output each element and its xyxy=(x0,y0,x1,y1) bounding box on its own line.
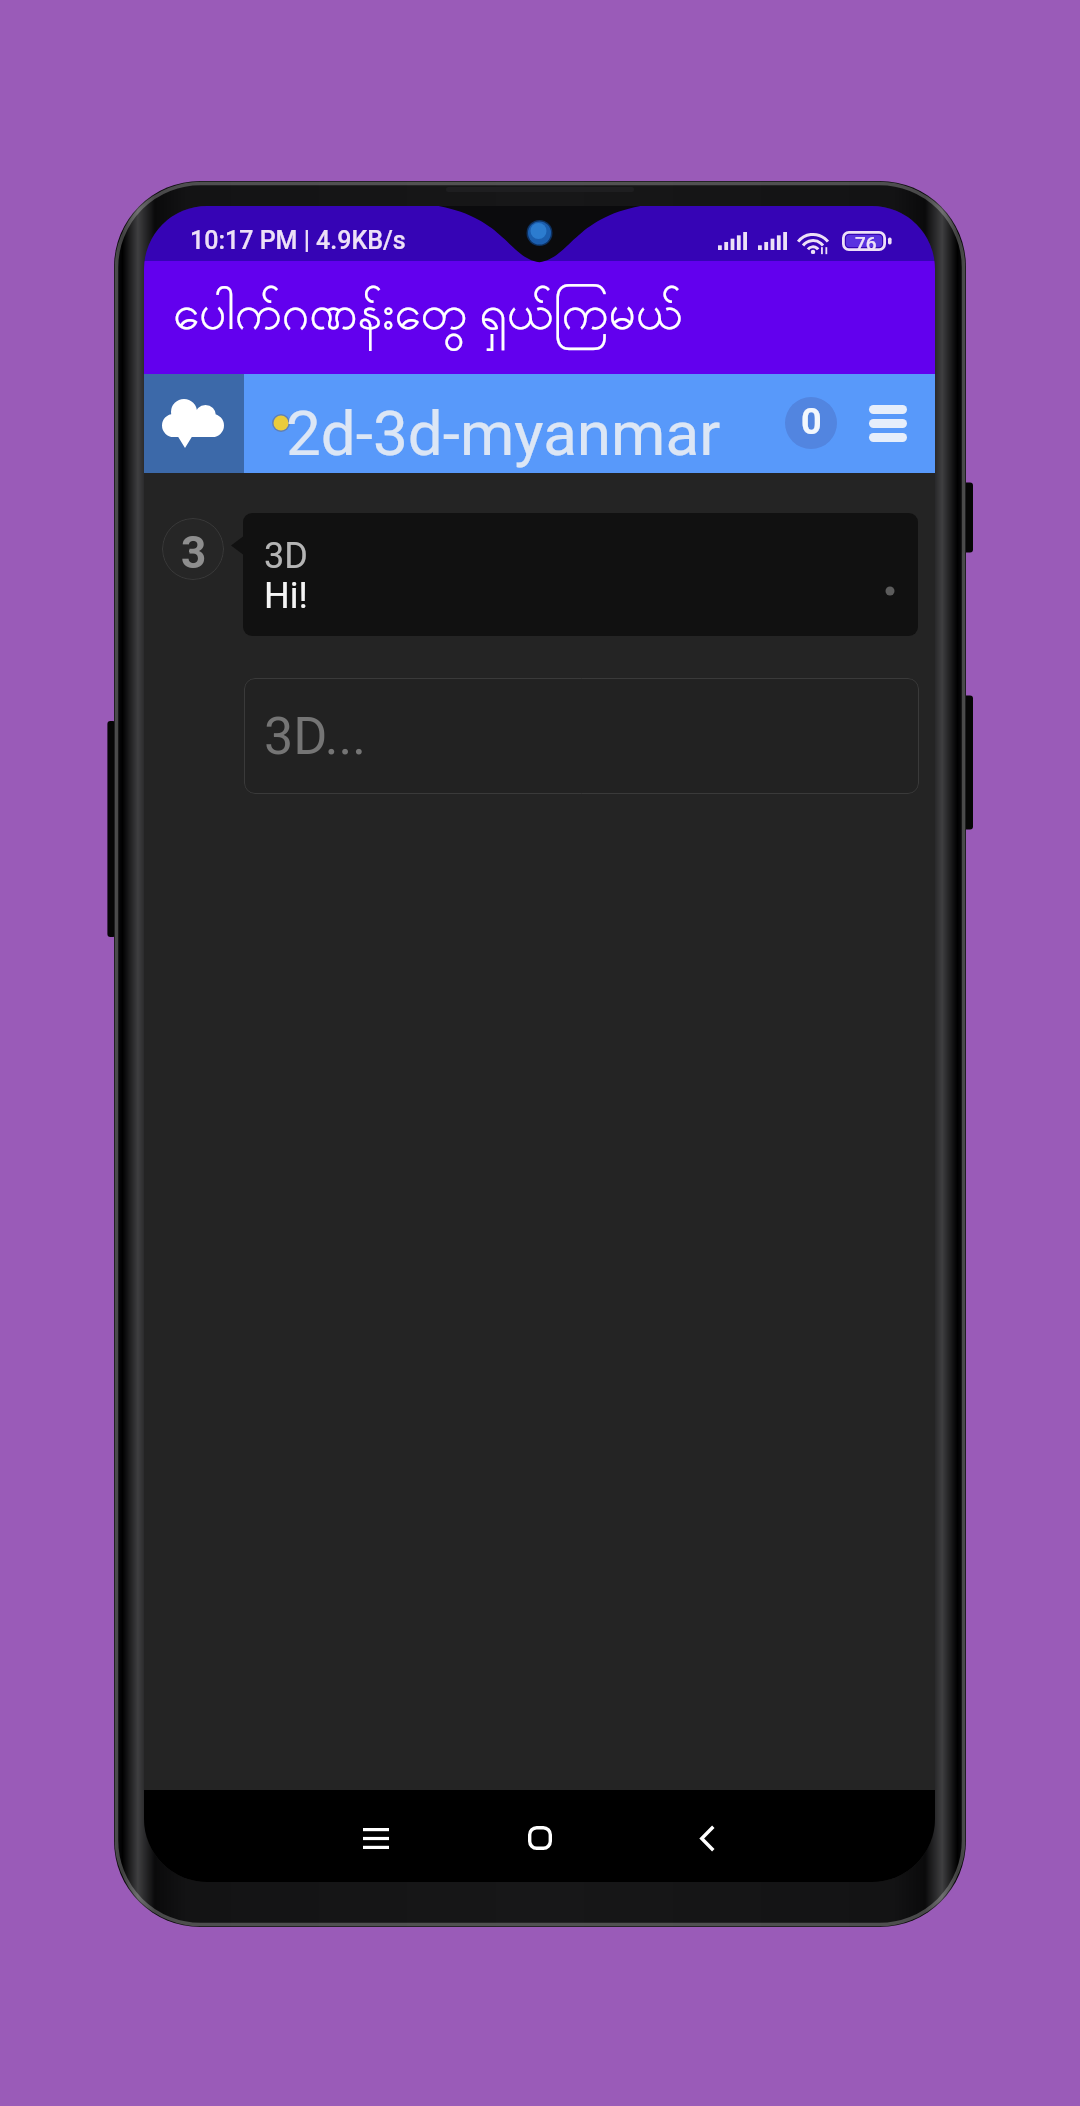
button[interactable]: Home xyxy=(504,1802,576,1874)
staticText: Hi! xyxy=(264,575,308,617)
button[interactable]: Back xyxy=(671,1802,743,1874)
button[interactable]: Recents xyxy=(340,1802,412,1874)
staticText: 3D xyxy=(264,535,308,577)
staticText: 2d-3d-myanmar xyxy=(286,397,721,470)
button[interactable]: App icon xyxy=(144,374,244,473)
staticText: ပေါက်ဂဏန်းတွေ ရှယ်ကြမယ် xyxy=(173,282,683,353)
button[interactable]: 3 xyxy=(162,518,224,580)
staticText: 10:17 PM | 4.9KB/s xyxy=(190,226,406,255)
button[interactable]: Notifications: 0 xyxy=(785,397,837,449)
button[interactable]: 3D... xyxy=(244,678,919,794)
staticText: 0 xyxy=(801,401,822,443)
staticText: 76 xyxy=(855,232,877,252)
staticText: 3 xyxy=(181,527,207,579)
button[interactable]: Menu xyxy=(858,393,918,453)
staticText: 3D... xyxy=(264,706,366,767)
button[interactable]: 3D xyxy=(243,513,918,636)
